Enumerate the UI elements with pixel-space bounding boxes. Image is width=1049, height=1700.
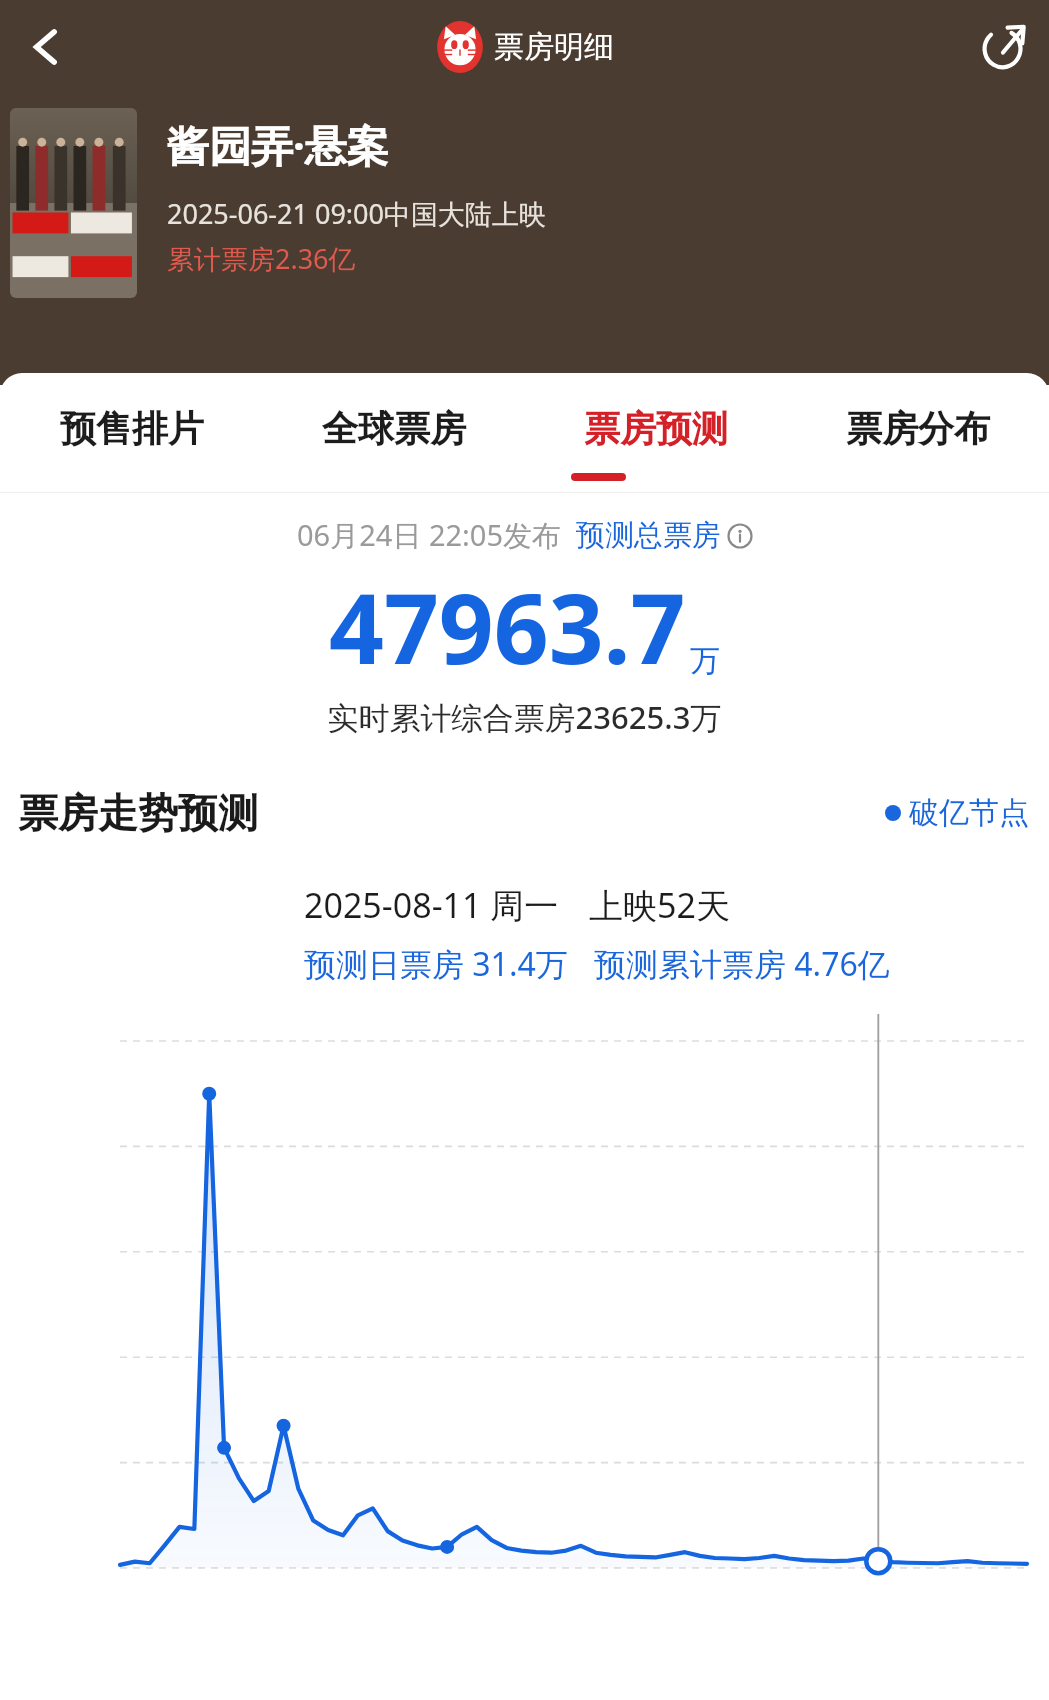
- button[interactable]: 2025-08-11 周一: [272, 866, 952, 1014]
- staticText: 2025-06-21 09:00中国大陆上映: [167, 195, 546, 232]
- staticText: 累计票房2.36亿: [167, 240, 356, 277]
- button[interactable]: [10, 108, 137, 298]
- staticText: 实时累计综合票房23625.3万: [0, 696, 1049, 738]
- staticText: 47963.7: [329, 561, 686, 692]
- staticText: 酱园弄·悬案: [167, 116, 389, 173]
- staticText: 票房走势预测: [18, 788, 258, 838]
- staticText: 票房分布: [846, 406, 990, 451]
- button[interactable]: 预售排片: [0, 373, 263, 483]
- button[interactable]: 破亿节点: [885, 794, 1029, 832]
- staticText: 万: [690, 642, 720, 680]
- button[interactable]: 票房分布: [787, 373, 1049, 483]
- staticText: 票房明细: [494, 28, 614, 66]
- button[interactable]: 预测总票房: [576, 517, 753, 554]
- staticText: 全球票房: [322, 406, 466, 451]
- button[interactable]: Back: [0, 0, 93, 93]
- staticText: 06月24日 22:05发布: [297, 515, 562, 555]
- button[interactable]: Share: [956, 0, 1049, 93]
- staticText: 2025-08-11 周一: [304, 882, 559, 928]
- staticText: 破亿节点: [909, 794, 1029, 832]
- staticText: 上映52天: [589, 882, 730, 928]
- staticText: 预测总票房: [576, 517, 721, 554]
- staticText: 预测累计票房 4.76亿: [594, 942, 890, 986]
- button[interactable]: 票房预测: [525, 373, 787, 483]
- staticText: 票房预测: [584, 406, 728, 451]
- staticText: 预售排片: [60, 406, 204, 451]
- button[interactable]: 全球票房: [263, 373, 525, 483]
- staticText: 预测日票房 31.4万: [304, 942, 568, 986]
